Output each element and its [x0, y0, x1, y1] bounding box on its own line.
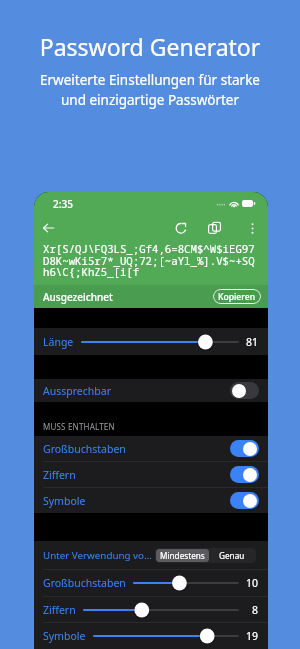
- button[interactable]: Symbole: [34, 488, 268, 513]
- button[interactable]: Mindestens: [156, 549, 209, 562]
- staticText: Genau: [219, 550, 245, 561]
- staticText: Symbole: [43, 629, 86, 643]
- button[interactable]: Aussprechbar: [34, 379, 268, 402]
- staticText: Großbuchstaben: [43, 442, 126, 456]
- staticText: Symbole: [43, 494, 86, 508]
- staticText: Unter Verwendung vo…: [43, 549, 152, 562]
- staticText: Password Generator: [0, 31, 300, 62]
- staticText: 10: [246, 576, 259, 590]
- button[interactable]: More options: [242, 218, 262, 238]
- staticText: Mindestens: [160, 550, 205, 561]
- staticText: Ausgezeichnet: [43, 290, 113, 304]
- staticText: Länge: [43, 335, 74, 349]
- button[interactable]: Ziffern: [34, 462, 268, 487]
- button[interactable]: Großbuchstaben: [34, 436, 268, 461]
- staticText: Xr[S/QJ\FQ3LS_;Gf4,6=8CM$^W$iEG97 D8K~wK…: [43, 242, 255, 279]
- button[interactable]: Copy: [204, 217, 226, 239]
- staticText: Aussprechbar: [43, 384, 111, 398]
- staticText: 19: [246, 629, 259, 643]
- staticText: Erweiterte Einstellungen für starke und …: [0, 71, 300, 109]
- button[interactable]: Genau: [209, 549, 255, 562]
- staticText: Großbuchstaben: [43, 576, 126, 590]
- staticText: Kopieren: [218, 291, 256, 303]
- staticText: Ziffern: [43, 468, 76, 482]
- staticText: Ziffern: [43, 603, 76, 617]
- staticText: MUSS ENTHALTEN: [43, 421, 115, 432]
- button[interactable]: Regenerate: [170, 217, 192, 239]
- staticText: 2:35: [53, 197, 73, 211]
- button[interactable]: Back: [37, 217, 59, 239]
- staticText: 81: [246, 335, 259, 349]
- button[interactable]: Kopieren: [213, 289, 261, 304]
- staticText: 8: [252, 603, 259, 617]
